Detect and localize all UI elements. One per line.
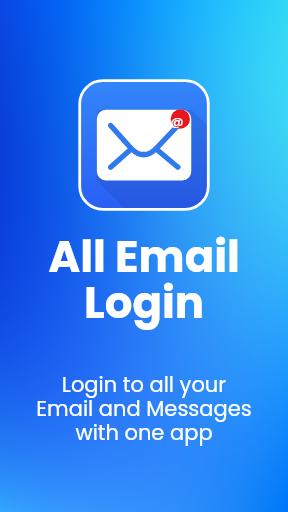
staticText: All Email Login (0, 226, 288, 333)
button[interactable]: All Email Login app icon (78, 79, 210, 211)
staticText: Login to all your Email and Messages wit… (0, 370, 288, 447)
staticText: @ (170, 112, 184, 130)
